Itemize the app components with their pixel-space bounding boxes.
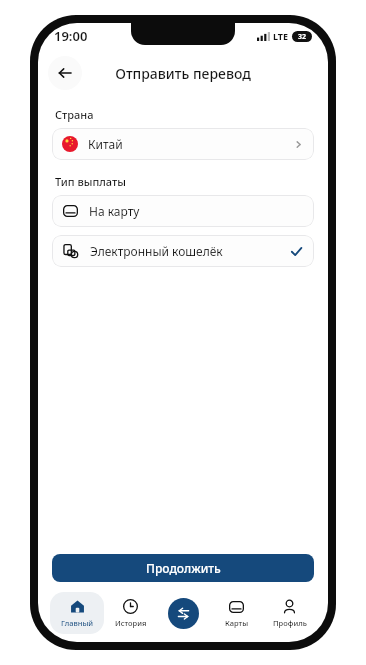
staticText: Китай (88, 136, 123, 152)
button[interactable]: Профиль (263, 592, 316, 634)
staticText: Главный (61, 618, 94, 628)
staticText: На карту (89, 203, 140, 219)
staticText: Карты (225, 618, 249, 628)
staticText: Отправить перевод (115, 64, 251, 83)
button[interactable]: Карты (210, 592, 263, 634)
button[interactable]: Продолжить (52, 554, 314, 582)
button[interactable]: Электронный кошелёк (52, 235, 314, 267)
button[interactable]: Китай (52, 128, 314, 160)
button[interactable]: История (104, 592, 157, 634)
staticText: 19:00 (54, 27, 88, 45)
staticText: История (115, 618, 147, 628)
button[interactable]: Главный (50, 592, 104, 634)
staticText: Страна (55, 107, 94, 122)
button[interactable]: На карту (52, 195, 314, 227)
button[interactable]: Back (48, 56, 82, 90)
button[interactable]: Transfer (168, 598, 199, 629)
staticText: Профиль (273, 618, 307, 628)
staticText: Тип выплаты (55, 174, 126, 189)
staticText: 32 (298, 32, 307, 42)
staticText: Продолжить (146, 560, 221, 576)
staticText: LTE (273, 30, 289, 42)
staticText: Электронный кошелёк (90, 243, 223, 259)
